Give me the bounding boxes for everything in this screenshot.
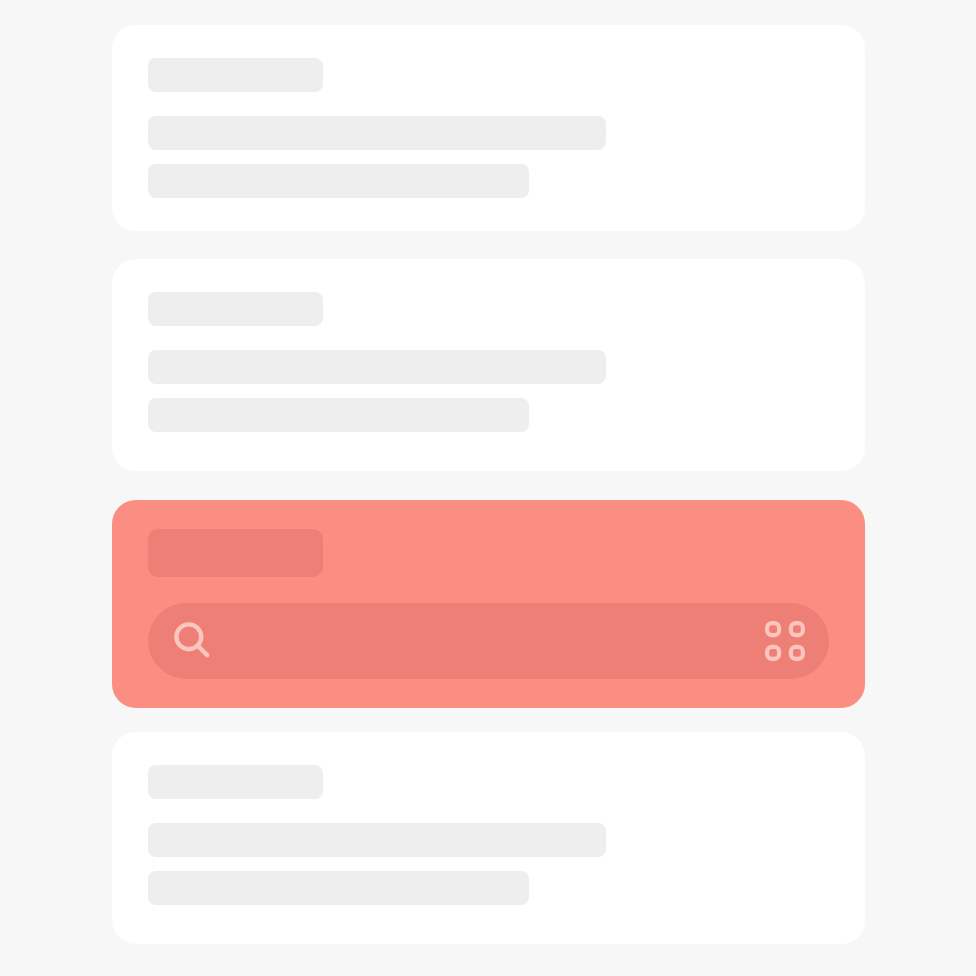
button[interactable] [112,25,865,231]
button[interactable]: Search [148,603,829,679]
button[interactable]: Search [112,500,865,708]
button[interactable] [112,732,865,944]
other: Search [172,620,214,662]
other: Grid view [765,621,805,661]
button[interactable] [112,259,865,471]
